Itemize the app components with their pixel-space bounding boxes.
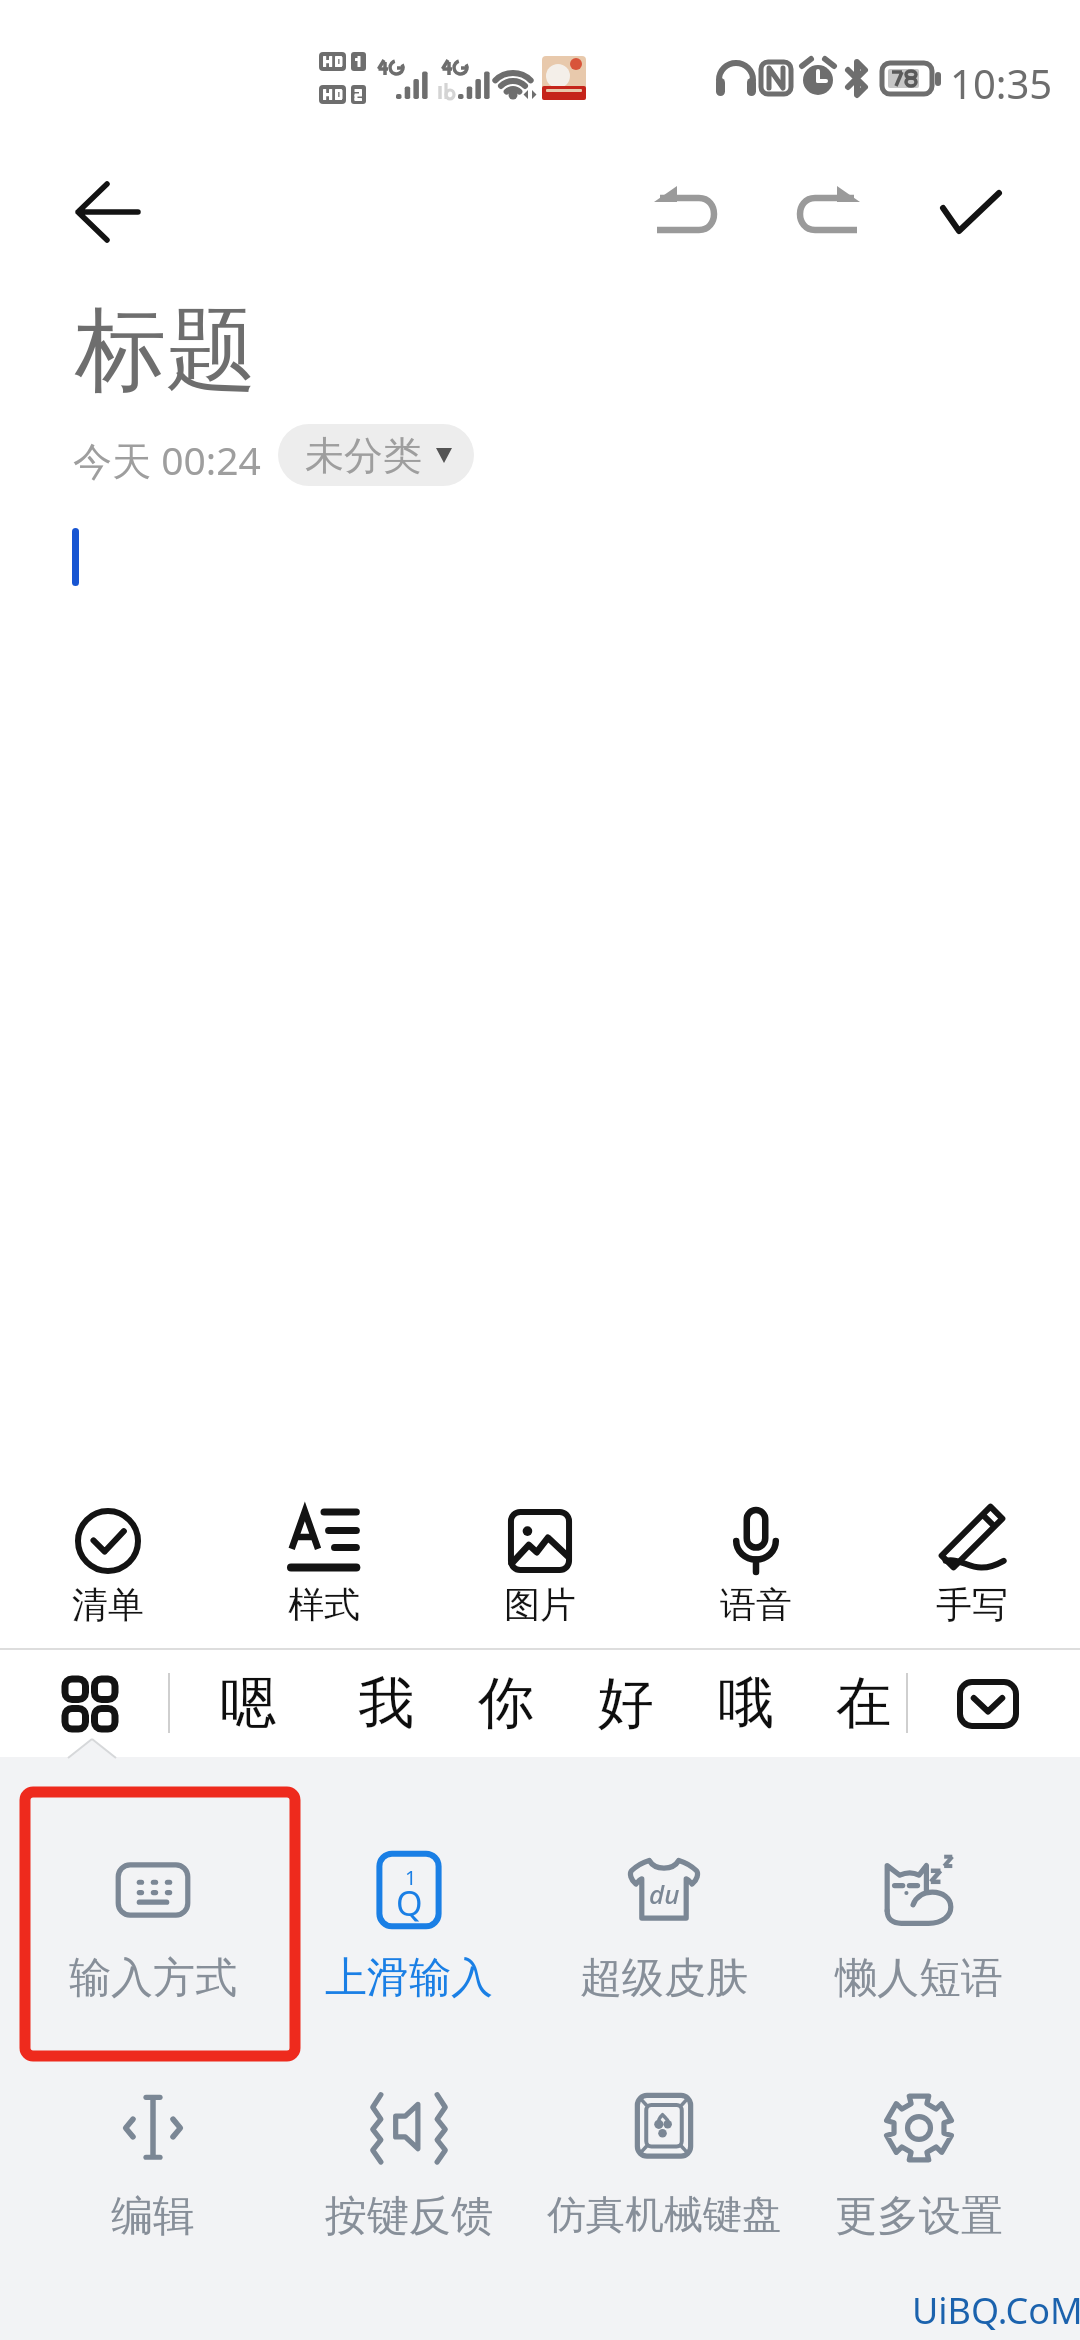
staticText: 手写 [936, 1582, 1008, 1627]
button[interactable]: Redo [764, 158, 894, 264]
staticText: UiBQ.CoM [912, 2286, 1080, 2335]
button[interactable]: Keyboard menu [40, 1650, 140, 1757]
button[interactable]: 1 [281, 1789, 536, 2057]
button[interactable]: 输入方式 [25, 1789, 281, 2057]
button[interactable]: 语音 [648, 1470, 864, 1649]
staticText: 按键反馈 [325, 2190, 493, 2243]
staticText: 1 [405, 1864, 417, 1891]
button[interactable]: 懒人短语 [791, 1789, 1046, 2057]
button[interactable]: 清单 [0, 1470, 216, 1649]
staticText: 上滑输入 [325, 1952, 493, 2005]
button[interactable]: Back [40, 158, 176, 264]
staticText: 标题 [75, 293, 257, 408]
button[interactable]: 样式 [216, 1470, 432, 1649]
staticText: 未分类 [305, 431, 422, 480]
button[interactable]: du [536, 1789, 791, 2057]
button[interactable]: 你 [456, 1650, 556, 1757]
button[interactable]: 未分类 [278, 424, 474, 486]
button[interactable]: Undo [620, 158, 750, 264]
button[interactable]: 更多设置 [791, 2027, 1046, 2295]
staticText: 清单 [72, 1582, 144, 1627]
button[interactable]: Hide keyboard [932, 1650, 1044, 1757]
button[interactable]: 按键反馈 [281, 2027, 536, 2295]
staticText: 编辑 [111, 2190, 195, 2243]
button[interactable]: 在 [814, 1650, 914, 1757]
staticText: 今天 00:24 [73, 433, 261, 486]
staticText: 你 [478, 1668, 534, 1739]
button[interactable]: 图片 [432, 1470, 648, 1649]
staticText: 更多设置 [835, 2190, 1003, 2243]
staticText: 哦 [718, 1668, 774, 1739]
button[interactable]: 手写 [864, 1470, 1080, 1649]
button[interactable]: 好 [576, 1650, 676, 1757]
staticText: 语音 [720, 1582, 792, 1627]
staticText: 嗯 [220, 1668, 276, 1739]
staticText: 好 [598, 1668, 654, 1739]
staticText: 超级皮肤 [580, 1952, 748, 2005]
button[interactable]: 编辑 [25, 2027, 281, 2295]
staticText: 输入方式 [69, 1952, 237, 2005]
staticText: 懒人短语 [835, 1952, 1003, 2005]
button[interactable]: 我 [336, 1650, 436, 1757]
button[interactable]: Done [906, 158, 1036, 264]
staticText: 在 [836, 1668, 892, 1739]
staticText: du [649, 1876, 680, 1911]
staticText: 图片 [504, 1582, 576, 1627]
button[interactable]: 哦 [696, 1650, 796, 1757]
button[interactable]: 嗯 [198, 1650, 298, 1757]
staticText: 我 [358, 1668, 414, 1739]
button[interactable]: 仿真机械键盘 [536, 2027, 791, 2295]
staticText: 10:35 [950, 56, 1053, 110]
staticText: Q [396, 1880, 423, 1926]
staticText: 仿真机械键盘 [547, 2190, 781, 2239]
staticText: 样式 [288, 1582, 360, 1627]
